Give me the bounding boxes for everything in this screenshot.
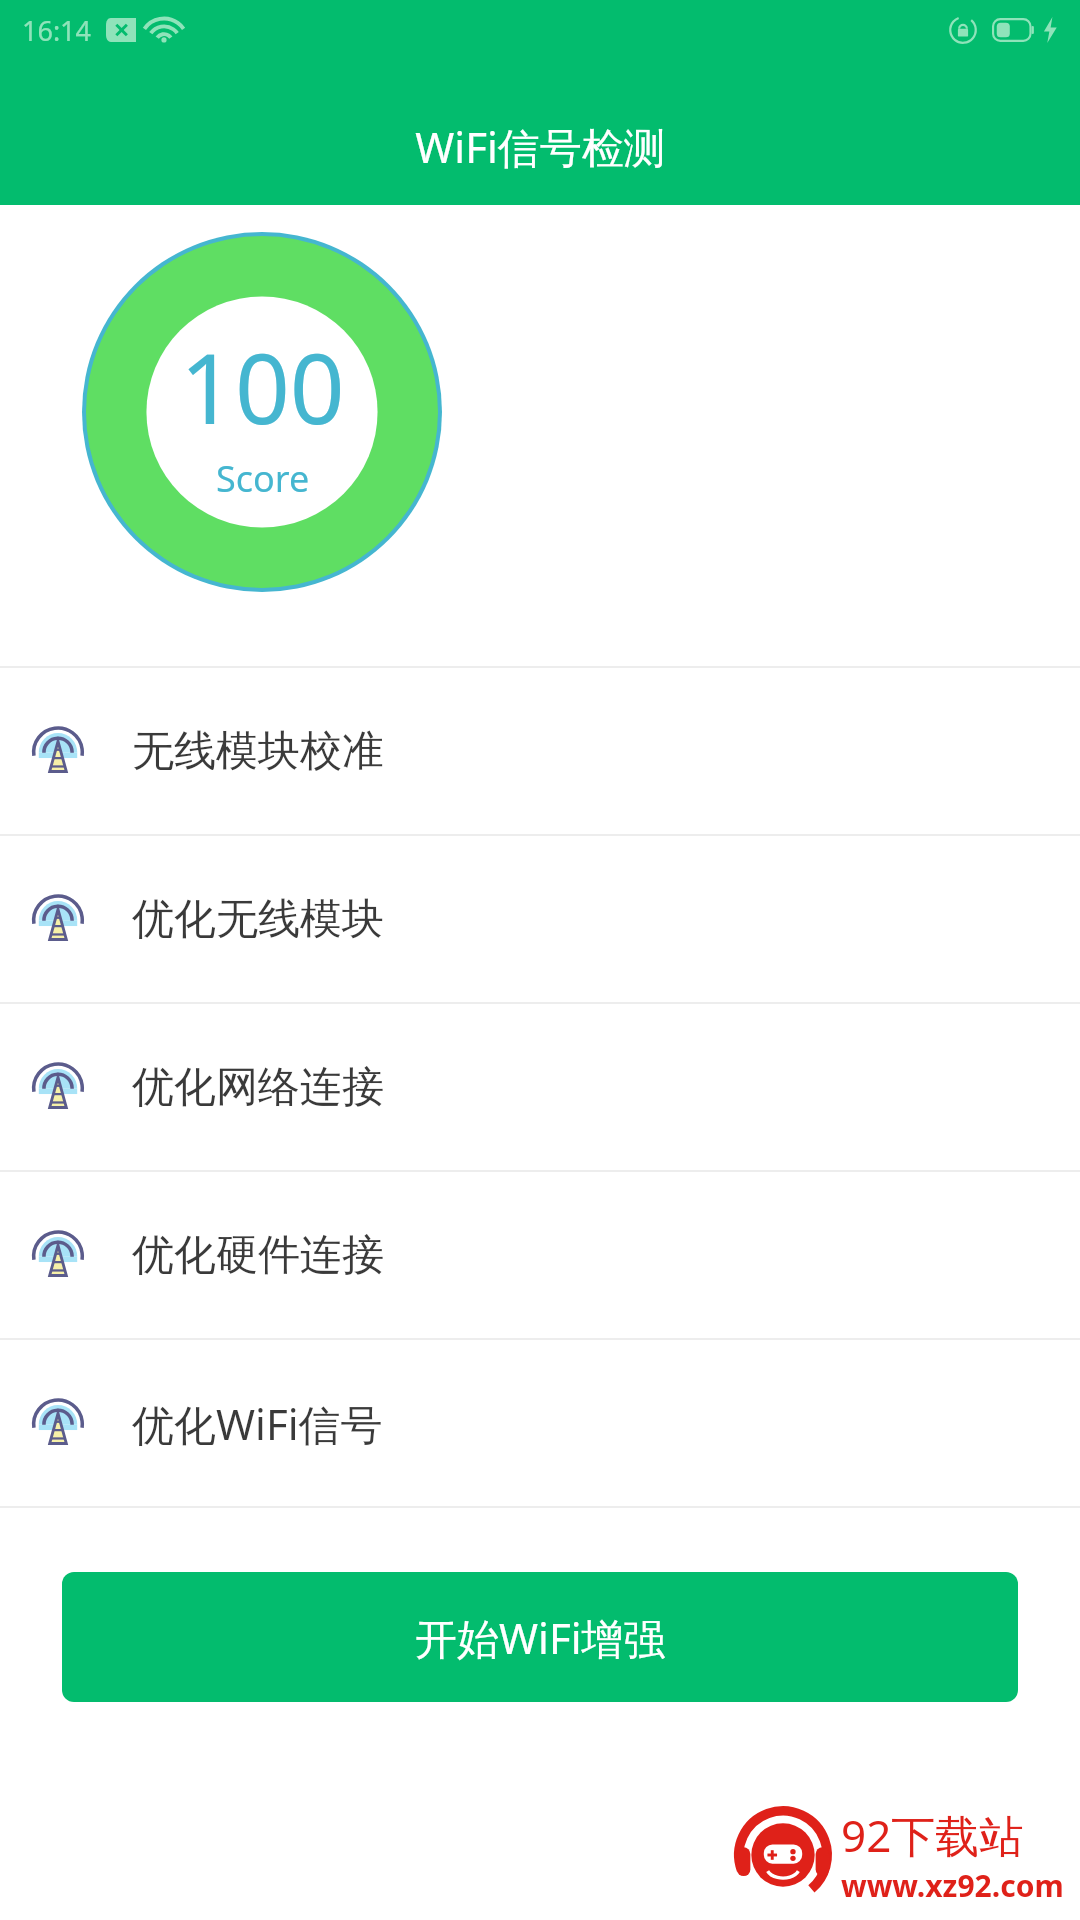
- staticText: 优化无线模块: [132, 893, 384, 946]
- button[interactable]: 无线模块校准: [0, 668, 1080, 834]
- staticText: 92下载站: [841, 1805, 1024, 1865]
- staticText: 16:14: [22, 12, 92, 49]
- button[interactable]: 开始WiFi增强: [62, 1572, 1018, 1702]
- button[interactable]: 优化无线模块: [0, 836, 1080, 1002]
- staticText: 优化网络连接: [132, 1061, 384, 1114]
- staticText: 100: [180, 321, 345, 452]
- staticText: 优化WiFi信号: [132, 1395, 383, 1452]
- staticText: 开始WiFi增强: [415, 1609, 666, 1666]
- staticText: 无线模块校准: [132, 725, 384, 778]
- button[interactable]: 优化WiFi信号: [0, 1340, 1080, 1506]
- staticText: WiFi信号检测: [415, 118, 666, 175]
- staticText: www.xz92.com: [841, 1865, 1064, 1906]
- staticText: Score: [216, 454, 310, 503]
- button[interactable]: 优化网络连接: [0, 1004, 1080, 1170]
- staticText: 优化硬件连接: [132, 1229, 384, 1282]
- button[interactable]: 优化硬件连接: [0, 1172, 1080, 1338]
